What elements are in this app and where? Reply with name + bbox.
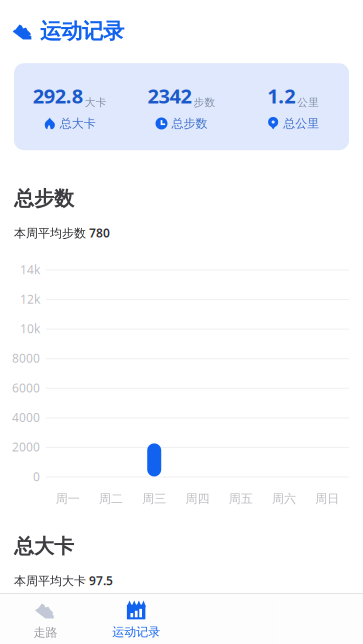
staticText: 292.8 (33, 83, 83, 109)
staticText: 周六 (272, 491, 296, 506)
staticText: 本周平均步数 780 (14, 225, 110, 241)
staticText: 2342 (147, 83, 191, 109)
button[interactable]: 运动记录 (91, 594, 182, 644)
staticText: 周二 (99, 491, 123, 506)
staticText: 运动记录 (112, 625, 160, 639)
staticText: 0 (33, 468, 40, 484)
staticText: 10k (20, 321, 40, 337)
staticText: 周五 (229, 491, 253, 506)
staticText: 8000 (12, 350, 40, 366)
staticText: 周四 (185, 491, 209, 506)
staticText: 1.2 (267, 83, 295, 109)
staticText: 周日 (315, 491, 339, 506)
staticText: 总大卡 (60, 116, 96, 131)
staticText: 总步数 (14, 186, 74, 211)
staticText: 步数 (193, 96, 215, 109)
staticText: 走路 (33, 625, 57, 640)
staticText: 12k (20, 291, 40, 307)
staticText: 6000 (12, 380, 40, 396)
staticText: 公里 (297, 96, 319, 109)
staticText: 2000 (12, 439, 40, 455)
staticText: 14k (20, 261, 40, 277)
staticText: 运动记录 (40, 18, 124, 44)
staticText: 总公里 (283, 116, 319, 131)
staticText: 本周平均大卡 97.5 (14, 573, 113, 588)
button[interactable]: 走路 (0, 593, 91, 644)
staticText: 总大卡 (14, 534, 74, 559)
staticText: 周一 (56, 491, 80, 506)
staticText: 大卡 (85, 96, 107, 109)
staticText: 4000 (12, 409, 40, 425)
staticText: 总步数 (171, 116, 207, 131)
staticText: 周三 (142, 491, 166, 506)
